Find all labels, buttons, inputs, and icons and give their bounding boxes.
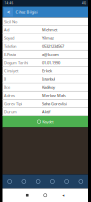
staticText: Yilmaz <box>42 35 54 41</box>
staticText: Cinsiyet <box>4 68 18 73</box>
staticText: Dogum Tarihi <box>4 60 28 65</box>
staticText: Istanbul <box>42 76 55 82</box>
staticText: 05321234567 <box>42 43 64 49</box>
button[interactable]: Tool <box>74 179 88 183</box>
staticText: E-Posta <box>4 52 16 57</box>
staticText: Sicil No <box>4 19 17 24</box>
button[interactable]: Recents <box>18 188 36 202</box>
button[interactable]: Home <box>36 188 54 202</box>
button[interactable]: Il <box>2 75 88 83</box>
staticText: ◀ <box>62 194 64 197</box>
staticText: a@b.com <box>42 52 59 57</box>
staticText: 14:46 <box>4 1 13 5</box>
staticText: Ad <box>4 27 9 32</box>
staticText: Durum <box>4 109 17 114</box>
staticText: Mehmet <box>42 27 57 32</box>
staticText: Merkez Mah. <box>42 93 66 98</box>
button[interactable]: Tool <box>45 179 59 183</box>
button[interactable]: Tool <box>31 179 45 183</box>
button[interactable]: Back <box>4 7 13 16</box>
button[interactable]: Back <box>54 188 72 202</box>
button[interactable]: Cinsiyet <box>2 67 88 75</box>
button[interactable]: Telefon <box>2 42 88 50</box>
button[interactable]: Soyad <box>2 34 88 42</box>
staticText: Kadikoy <box>42 84 55 90</box>
button[interactable]: E-Posta <box>2 50 88 58</box>
staticText: Gorev Tipi <box>4 101 22 106</box>
button[interactable]: Ilce <box>2 83 88 91</box>
staticText: Telefon <box>4 43 16 49</box>
button[interactable]: Tool <box>59 179 74 183</box>
button[interactable]: Durum <box>2 108 88 116</box>
staticText: 01.01.1990 <box>42 60 60 65</box>
button[interactable]: Dogum Tarihi <box>2 58 88 67</box>
button[interactable]: Sicil No <box>2 17 88 26</box>
staticText: Ilce <box>4 84 10 90</box>
button[interactable]: Tool <box>17 179 31 183</box>
staticText: Soyad <box>4 35 14 41</box>
button[interactable]: Ad <box>2 26 88 34</box>
staticText: Kaydet <box>42 119 53 124</box>
staticText: < <box>7 8 10 16</box>
button[interactable]: Kaydet <box>2 116 88 127</box>
staticText: Adres <box>4 93 15 98</box>
button[interactable]: Adres <box>2 91 88 99</box>
button[interactable]: Tool <box>2 179 17 183</box>
staticText: Aktif <box>42 109 50 114</box>
button[interactable]: Gorev Tipi <box>2 99 88 108</box>
staticText: Saha Gorevlisi <box>42 101 67 106</box>
staticText: Cihaz Bilgisi <box>15 9 37 15</box>
staticText: Il <box>4 76 6 82</box>
staticText: Erkek <box>42 68 52 73</box>
staticText: 4G <box>82 1 86 5</box>
